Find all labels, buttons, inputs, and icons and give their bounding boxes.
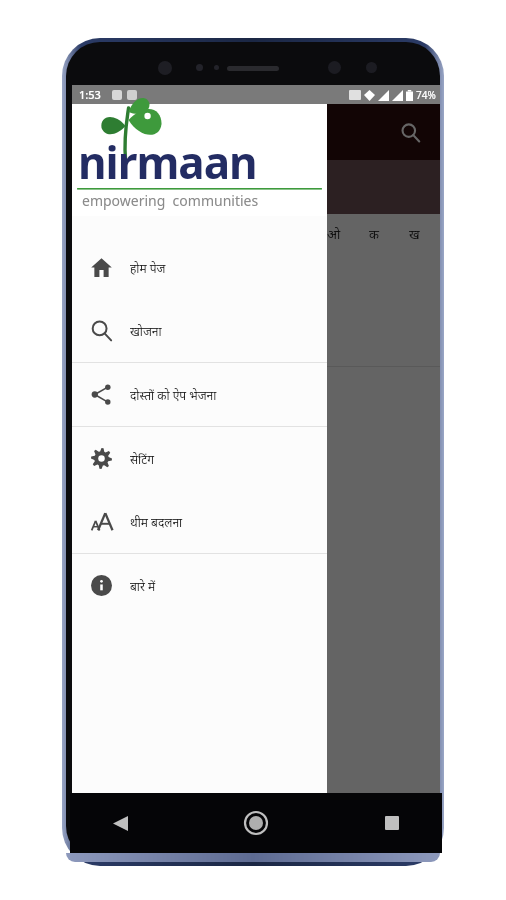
staticText: दोस्तों को ऐप भेजना — [130, 387, 217, 403]
button[interactable]: खोजना — [72, 299, 327, 362]
staticText: ओ — [327, 225, 341, 243]
button[interactable]: थीम बदलना — [72, 490, 327, 553]
staticText: खोजना — [130, 323, 162, 339]
staticText: Do not be arrogant — [88, 275, 215, 294]
button[interactable]: Back — [100, 803, 140, 843]
staticText: be ambitious — [88, 331, 174, 350]
button[interactable]: Home — [234, 801, 278, 845]
staticText: see ? — [88, 453, 121, 472]
staticText: nirmaan — [78, 132, 257, 192]
staticText: 74% — [416, 88, 436, 102]
staticText: थीम बदलना — [130, 514, 183, 530]
button[interactable]: Do not be arrogant — [88, 254, 424, 314]
button[interactable]: ख — [394, 214, 434, 254]
button[interactable]: Recents — [372, 803, 412, 843]
staticText: क — [369, 225, 379, 243]
button[interactable]: बारे में — [72, 554, 327, 617]
button[interactable]: be ambitious — [88, 314, 424, 366]
staticText: बारे में — [130, 578, 156, 594]
staticText: सेटिंग — [130, 451, 155, 467]
staticText: होम पेज — [130, 260, 166, 276]
button[interactable]: Search — [390, 112, 430, 152]
button[interactable]: ओ — [314, 214, 354, 254]
staticText: ख — [409, 225, 420, 243]
button[interactable]: दोस्तों को ऐप भेजना — [72, 363, 327, 426]
button[interactable]: क — [354, 214, 394, 254]
staticText: empowering communities — [82, 191, 259, 210]
staticText: 1:53 — [79, 87, 101, 102]
button[interactable]: see ? — [88, 437, 424, 487]
button[interactable]: होम पेज — [72, 236, 327, 299]
button[interactable]: सेटिंग — [72, 427, 327, 490]
